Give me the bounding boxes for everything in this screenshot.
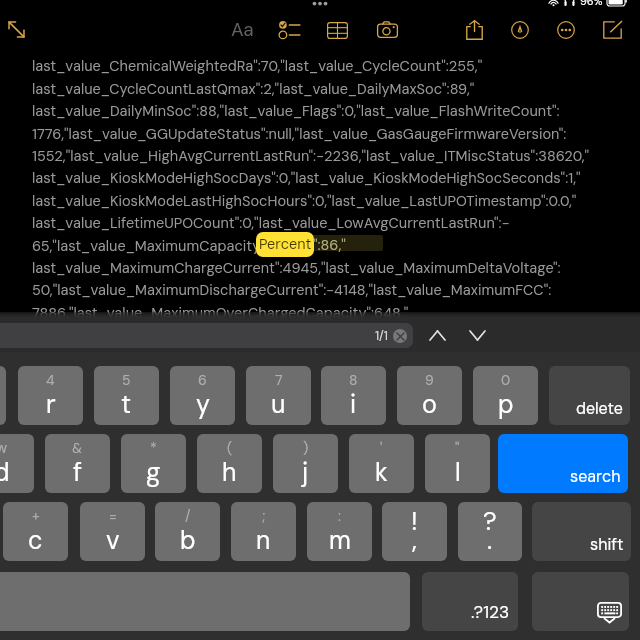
button[interactable]: 4	[18, 366, 83, 425]
staticText: 4	[46, 371, 55, 389]
staticText: 0	[501, 371, 511, 389]
staticText: 9	[425, 371, 434, 389]
staticText: shift	[590, 534, 624, 555]
button[interactable]: .?123	[422, 572, 518, 631]
staticText: 96%	[580, 0, 603, 8]
staticText: 5	[122, 371, 131, 389]
staticText: n	[256, 524, 271, 557]
staticText: t	[121, 388, 132, 421]
staticText: k	[375, 456, 388, 489]
button[interactable]: search	[498, 434, 628, 493]
staticText: 1/1	[375, 328, 388, 344]
staticText: last_value_MaximumChargeCurrent":4945,"l…	[32, 259, 561, 278]
button[interactable]: )	[273, 434, 338, 493]
button[interactable]: 6	[170, 366, 235, 425]
staticText: r	[46, 388, 56, 421]
staticText: .?123	[471, 601, 510, 623]
staticText: delete	[576, 398, 623, 419]
staticText: ,	[412, 524, 417, 557]
button[interactable]: Clear search	[393, 329, 407, 343]
staticText: ":86,"	[313, 236, 346, 255]
button[interactable]: Next match	[463, 321, 491, 349]
staticText: 1776,"last_value_GGUpdateStatus":null,"l…	[32, 125, 567, 144]
button[interactable]: 8	[321, 366, 386, 425]
staticText: 1552,"last_value_HighAvgCurrentLastRun":…	[32, 147, 590, 166]
button[interactable]: shift	[532, 502, 631, 561]
button[interactable]: /	[155, 502, 220, 561]
staticText: 8	[349, 371, 358, 389]
staticText: l	[455, 456, 461, 489]
button[interactable]: Checklist	[275, 15, 301, 41]
button[interactable]: New note	[599, 15, 625, 41]
button[interactable]: (	[197, 434, 262, 493]
button[interactable]: Table	[323, 15, 349, 41]
staticText: .	[487, 524, 493, 557]
staticText: ?	[483, 505, 497, 538]
button[interactable]: Camera	[372, 15, 398, 41]
button[interactable]: "	[425, 434, 490, 493]
staticText: 7886,"last_value_MaximumOverChargedCapac…	[32, 304, 409, 323]
staticText: (	[227, 439, 233, 457]
button[interactable]: delete	[549, 366, 630, 425]
button[interactable]: Share	[463, 15, 489, 41]
staticText: h	[222, 456, 237, 489]
button[interactable]: 3	[0, 366, 6, 425]
button[interactable]: '	[349, 434, 414, 493]
staticText: b	[180, 524, 196, 557]
staticText: last_value_KioskModeHighSocDays":0,"last…	[32, 169, 581, 188]
button[interactable]: :	[307, 502, 372, 561]
staticText: 50,"last_value_MaximumDischargeCurrent":…	[32, 281, 552, 300]
button[interactable]: ;	[231, 502, 296, 561]
staticText: =	[109, 507, 117, 525]
staticText: 7	[275, 371, 283, 389]
staticText: search	[570, 466, 621, 487]
staticText: 6	[198, 371, 207, 389]
button[interactable]: ?	[458, 502, 522, 561]
staticText: 65,"last_value_MaximumCapacity	[32, 237, 261, 256]
staticText: d	[0, 456, 10, 489]
button[interactable]: More options	[553, 15, 579, 41]
staticText: p	[498, 388, 514, 421]
staticText: *	[150, 439, 157, 457]
staticText: &	[72, 439, 83, 457]
staticText: :	[338, 507, 341, 525]
button[interactable]: Previous match	[423, 321, 451, 349]
staticText: last_value_CycleCountLastQmax":2,"last_v…	[32, 80, 475, 99]
button[interactable]: 1/1	[0, 323, 413, 348]
staticText: Percent	[259, 235, 312, 254]
button[interactable]: Expand note	[3, 16, 29, 42]
staticText: u	[271, 388, 286, 421]
staticText: Aa	[231, 17, 254, 42]
button[interactable]: w	[0, 434, 34, 493]
button[interactable]: =	[80, 502, 145, 561]
staticText: g	[146, 456, 161, 489]
staticText: w	[0, 439, 8, 457]
staticText: j	[302, 456, 309, 489]
staticText: /	[185, 507, 191, 525]
button[interactable]: !	[382, 502, 447, 561]
button[interactable]: Aa	[227, 15, 259, 45]
button[interactable]: 9	[397, 366, 462, 425]
button[interactable]: 0	[473, 366, 538, 425]
staticText: c	[28, 524, 43, 557]
staticText: v	[106, 524, 120, 557]
staticText: last_value_KioskModeLastHighSocHours":0,…	[32, 192, 577, 211]
staticText: ;	[262, 507, 266, 525]
staticText: o	[422, 388, 437, 421]
button[interactable]: Hide keyboard	[532, 572, 629, 631]
button[interactable]: Percent	[256, 232, 314, 257]
staticText: y	[196, 388, 210, 421]
button[interactable]: &	[45, 434, 110, 493]
staticText: i	[350, 388, 357, 421]
staticText: +	[32, 507, 40, 525]
button[interactable]: 5	[94, 366, 159, 425]
staticText: '	[380, 439, 383, 457]
button[interactable]: Markup	[507, 15, 533, 41]
button[interactable]: +	[3, 502, 68, 561]
button[interactable]: *	[121, 434, 186, 493]
staticText: m	[329, 524, 351, 557]
staticText: last_value_DailyMinSoc":88,"last_value_F…	[32, 102, 560, 121]
button[interactable]: 7	[246, 366, 311, 425]
staticText: last_value_LifetimeUPOCount":0,"last_val…	[32, 214, 510, 233]
